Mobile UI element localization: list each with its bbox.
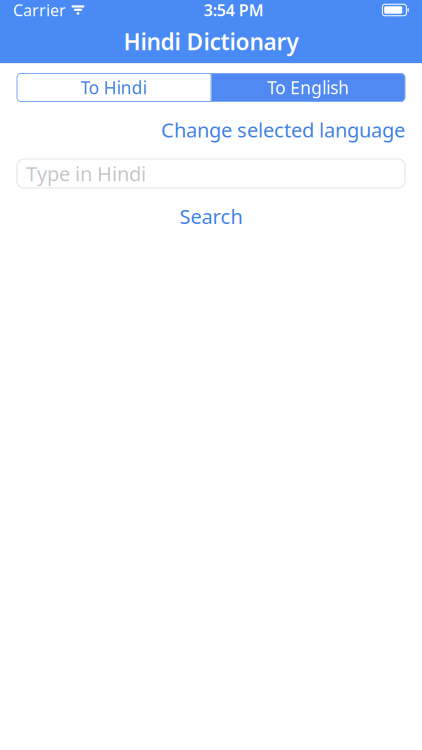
staticText: 3:54 PM <box>204 0 264 21</box>
button[interactable]: Search <box>17 197 405 236</box>
staticText: Search <box>179 203 242 230</box>
button[interactable]: To English <box>211 73 405 101</box>
staticText: Hindi Dictionary <box>123 26 298 56</box>
staticText: Carrier <box>13 0 66 21</box>
button[interactable]: To Hindi <box>17 73 210 101</box>
staticText: Type in Hindi <box>26 160 146 187</box>
staticText: To English <box>267 76 349 99</box>
button[interactable]: Change selected language <box>161 111 405 148</box>
staticText: Change selected language <box>161 116 405 143</box>
staticText: To Hindi <box>81 76 147 99</box>
